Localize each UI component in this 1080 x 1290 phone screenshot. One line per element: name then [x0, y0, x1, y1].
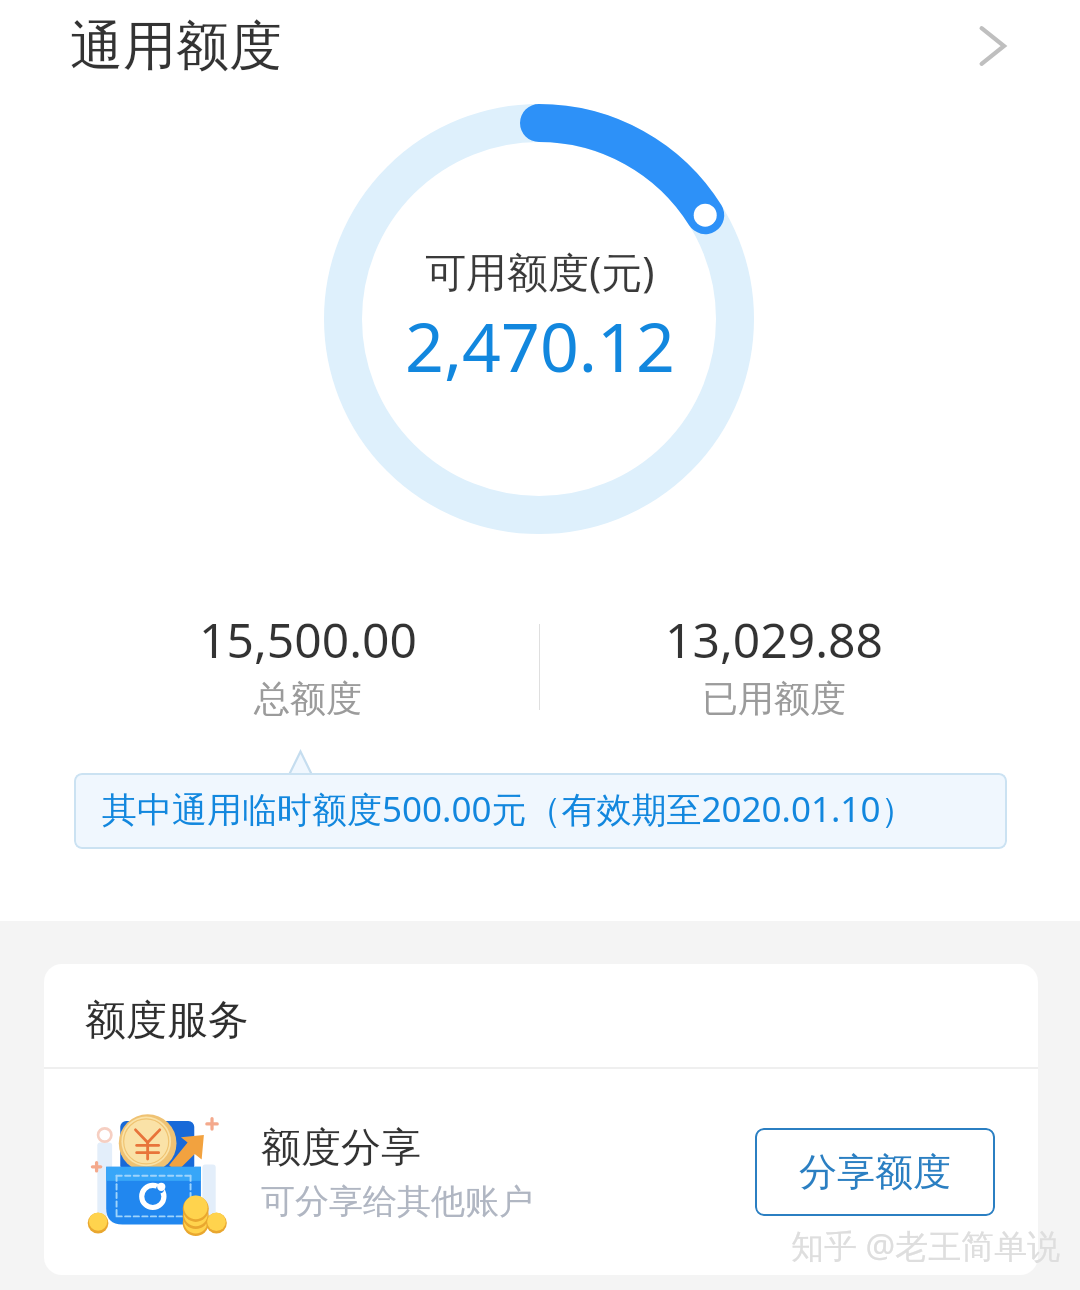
staticText: 13,029.88 — [665, 607, 883, 672]
button[interactable]: 分享额度 — [755, 1128, 995, 1216]
button[interactable]: 其中通用临时额度500.00元（有效期至2020.01.10） — [74, 773, 1007, 849]
staticText: 已用额度 — [702, 676, 846, 721]
staticText: 2,470.12 — [405, 299, 675, 392]
staticText: 额度分享 — [261, 1122, 421, 1172]
staticText: 其中通用临时额度500.00元（有效期至2020.01.10） — [102, 785, 916, 833]
staticText: 可用额度(元) — [425, 243, 655, 299]
button[interactable]: 通用额度 — [0, 0, 1080, 92]
staticText: 额度服务 — [85, 995, 249, 1047]
staticText: 15,500.00 — [199, 607, 417, 672]
other: More — [972, 26, 1012, 66]
staticText: 分享额度 — [799, 1148, 951, 1196]
staticText: 通用额度 — [70, 13, 282, 80]
staticText: 可分享给其他账户 — [261, 1180, 533, 1223]
button[interactable]: 额度分享 — [44, 1069, 1038, 1275]
staticText: 知乎 @老王简单说 — [791, 1223, 1061, 1268]
staticText: 总额度 — [254, 676, 362, 721]
